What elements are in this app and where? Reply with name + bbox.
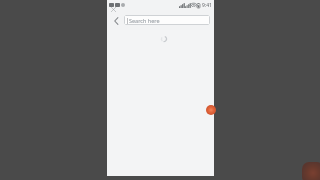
staticText: 9:41 — [202, 2, 212, 9]
button[interactable]: Search here — [124, 15, 210, 25]
staticText: Search here — [129, 17, 160, 24]
button[interactable]: Back — [110, 14, 123, 27]
button[interactable]: Marker — [206, 105, 216, 115]
